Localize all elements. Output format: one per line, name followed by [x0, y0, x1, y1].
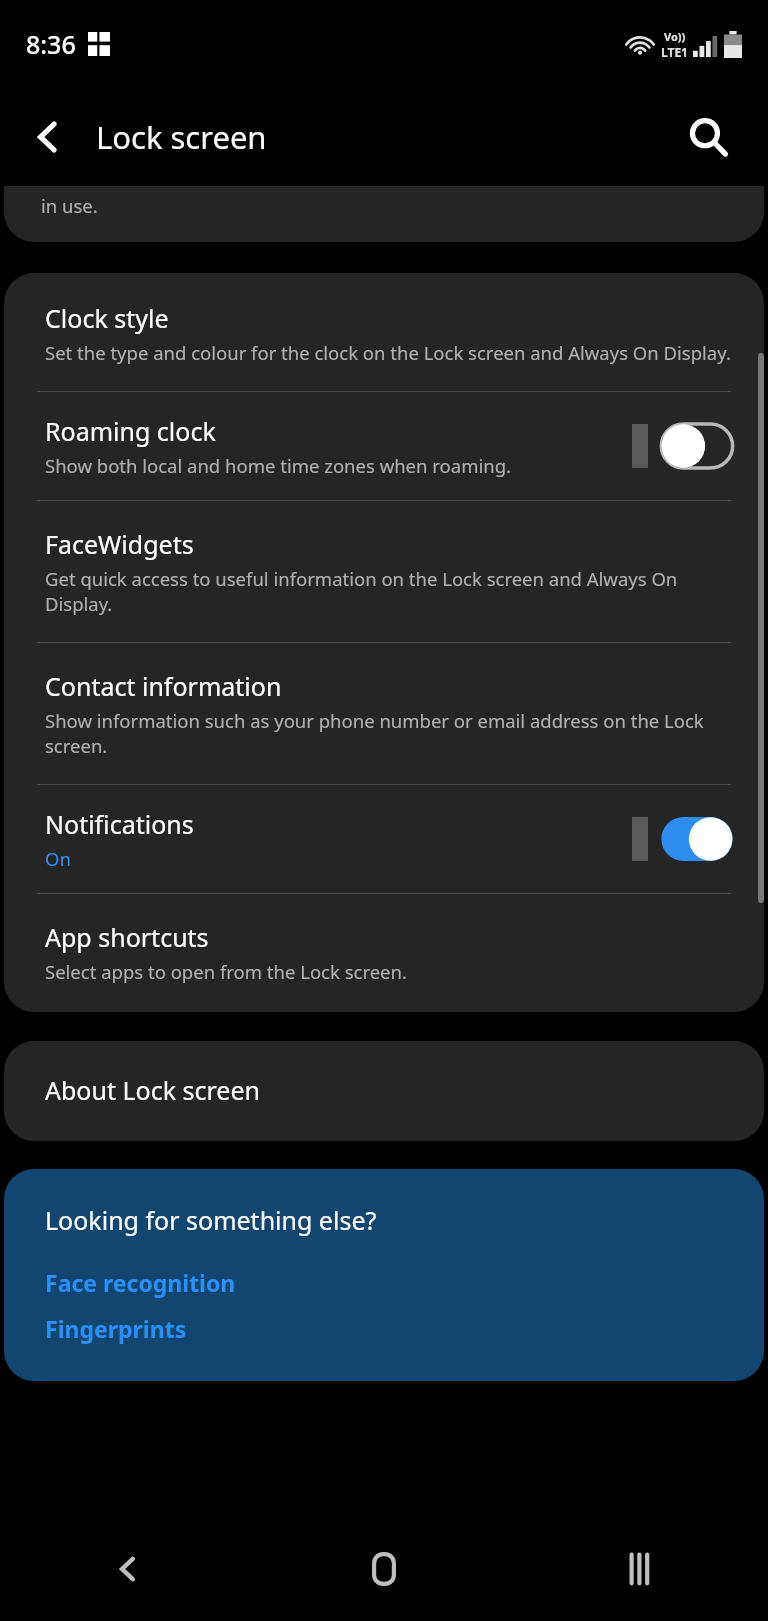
button[interactable]: Face recognition	[45, 1264, 236, 1301]
button[interactable]: Toggle off	[654, 418, 740, 474]
staticText: Get quick access to useful information o…	[45, 566, 740, 616]
button[interactable]: About Lock screen	[4, 1041, 764, 1141]
button[interactable]: in use.	[4, 186, 764, 242]
button[interactable]: Contact information	[4, 643, 764, 784]
staticText: Contact information	[45, 669, 282, 703]
button[interactable]: Notifications	[4, 785, 764, 893]
button[interactable]: Navigate up	[0, 89, 96, 185]
staticText: Looking for something else?	[45, 1203, 377, 1237]
button[interactable]: Toggle on	[654, 811, 740, 867]
staticText: LTE1	[661, 44, 688, 60]
staticText: Clock style	[45, 301, 169, 335]
button[interactable]: Recent apps	[512, 1516, 768, 1621]
staticText: 8:36	[26, 27, 76, 61]
staticText: Select apps to open from the Lock screen…	[45, 959, 407, 984]
staticText: FaceWidgets	[45, 527, 194, 561]
staticText: Set the type and colour for the clock on…	[45, 340, 731, 365]
staticText: Roaming clock	[45, 414, 216, 448]
staticText: Show information such as your phone numb…	[45, 708, 740, 758]
staticText: Vo))	[664, 29, 686, 44]
staticText: Notifications	[45, 807, 194, 841]
button[interactable]: Clock style	[4, 273, 764, 391]
button[interactable]: Roaming clock	[4, 392, 764, 500]
staticText: About Lock screen	[45, 1073, 260, 1107]
button[interactable]: Search	[666, 95, 750, 179]
button[interactable]: Back	[0, 1516, 256, 1621]
staticText: Face recognition	[45, 1267, 236, 1298]
staticText: in use.	[41, 193, 98, 218]
staticText: On	[45, 846, 71, 871]
button[interactable]: App shortcuts	[4, 894, 764, 1012]
staticText: Fingerprints	[45, 1313, 187, 1344]
button[interactable]: FaceWidgets	[4, 501, 764, 642]
staticText: App shortcuts	[45, 920, 209, 954]
staticText: Lock screen	[96, 116, 267, 158]
button[interactable]: Fingerprints	[45, 1310, 187, 1347]
staticText: Show both local and home time zones when…	[45, 453, 511, 478]
button[interactable]: Home	[256, 1516, 512, 1621]
